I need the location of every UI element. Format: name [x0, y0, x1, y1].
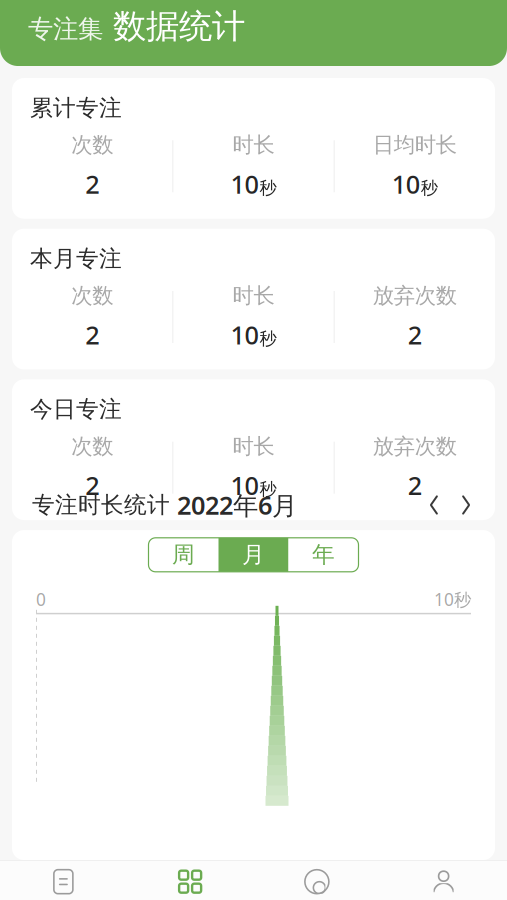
staticText: 放弃次数: [373, 283, 457, 309]
staticText: 10: [230, 468, 258, 502]
staticText: 时长: [232, 283, 274, 309]
staticText: 秒: [421, 177, 438, 199]
button[interactable]: 下一个月: [457, 494, 475, 516]
button[interactable]: 专注集: [28, 14, 103, 45]
staticText: 本月专注: [30, 245, 122, 272]
staticText: 专注集: [28, 14, 103, 45]
staticText: 今日专注: [30, 395, 122, 423]
staticText: 时长: [232, 433, 274, 459]
staticText: 累计专注: [30, 94, 122, 122]
staticText: 2022年6月: [177, 488, 297, 522]
staticText: 2: [408, 318, 422, 351]
button[interactable]: 上一个月: [425, 494, 443, 516]
staticText: 秒: [259, 177, 276, 199]
staticText: 0: [36, 588, 46, 611]
staticText: 秒: [259, 328, 276, 349]
staticText: 2: [85, 468, 99, 502]
staticText: 月: [242, 541, 265, 569]
button[interactable]: 周: [148, 538, 218, 572]
staticText: 数据统计: [113, 6, 245, 47]
button[interactable]: 月: [218, 538, 288, 572]
button[interactable]: 习惯: [253, 861, 380, 900]
staticText: 日均时长: [373, 132, 457, 158]
staticText: 放弃次数: [373, 433, 457, 459]
staticText: 次数: [71, 283, 113, 309]
staticText: 秒: [259, 479, 276, 500]
button[interactable]: 专注: [127, 861, 254, 900]
staticText: 10: [392, 167, 420, 201]
staticText: 次数: [71, 132, 113, 158]
staticText: 年: [312, 541, 335, 569]
staticText: 2: [85, 318, 99, 351]
button[interactable]: 记账: [0, 861, 127, 900]
button[interactable]: 年: [288, 538, 358, 572]
staticText: 10: [230, 318, 258, 351]
staticText: 时长: [232, 132, 274, 158]
staticText: 次数: [71, 433, 113, 459]
staticText: 专注时长统计: [32, 491, 177, 519]
staticText: 周: [172, 541, 195, 569]
staticText: 2: [408, 468, 422, 502]
staticText: 10: [230, 167, 258, 201]
staticText: 2: [85, 167, 99, 201]
staticText: 10秒: [434, 588, 471, 611]
button[interactable]: 我的: [380, 861, 507, 900]
